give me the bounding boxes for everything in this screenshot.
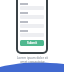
- staticText: Lorem ipsum dolor sit: [17, 56, 48, 60]
- button[interactable]: Submit: [20, 40, 44, 46]
- staticText: Submit: [27, 41, 38, 45]
- staticText: amet consectetur: [20, 60, 45, 64]
